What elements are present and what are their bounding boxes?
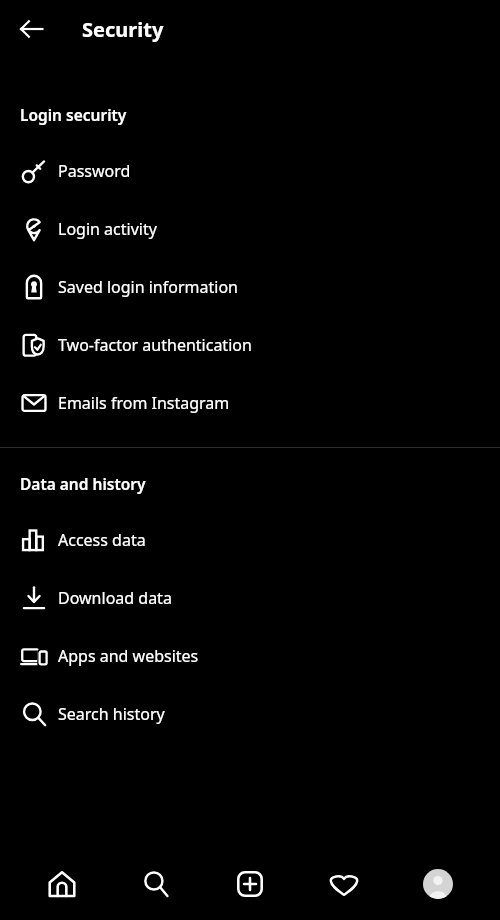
staticText: Search history	[58, 703, 165, 725]
staticText: Access data	[58, 529, 146, 551]
button[interactable]: Apps and websites	[0, 627, 500, 685]
button[interactable]: Activity	[312, 852, 376, 916]
staticText: Saved login information	[58, 276, 238, 298]
button[interactable]: Create new post	[218, 852, 282, 916]
button[interactable]: Profile	[406, 852, 470, 916]
button[interactable]: Search	[124, 852, 188, 916]
button[interactable]: Password	[0, 142, 500, 200]
button[interactable]: Emails from Instagram	[0, 374, 500, 432]
button[interactable]: Home	[30, 852, 94, 916]
staticText: Apps and websites	[58, 645, 199, 667]
button[interactable]: Login activity	[0, 200, 500, 258]
button[interactable]: Download data	[0, 569, 500, 627]
button[interactable]: Search history	[0, 685, 500, 743]
button[interactable]: Saved login information	[0, 258, 500, 316]
staticText: Two-factor authentication	[58, 334, 252, 356]
staticText: Password	[58, 160, 131, 182]
staticText: Emails from Instagram	[58, 392, 230, 414]
staticText: Login activity	[58, 218, 157, 240]
staticText: Login security	[20, 104, 127, 125]
staticText: Security	[82, 16, 164, 43]
staticText: Data and history	[20, 473, 146, 494]
button[interactable]: Two-factor authentication	[0, 316, 500, 374]
staticText: Download data	[58, 587, 172, 609]
button[interactable]: Access data	[0, 511, 500, 569]
button[interactable]: Back	[8, 5, 56, 53]
